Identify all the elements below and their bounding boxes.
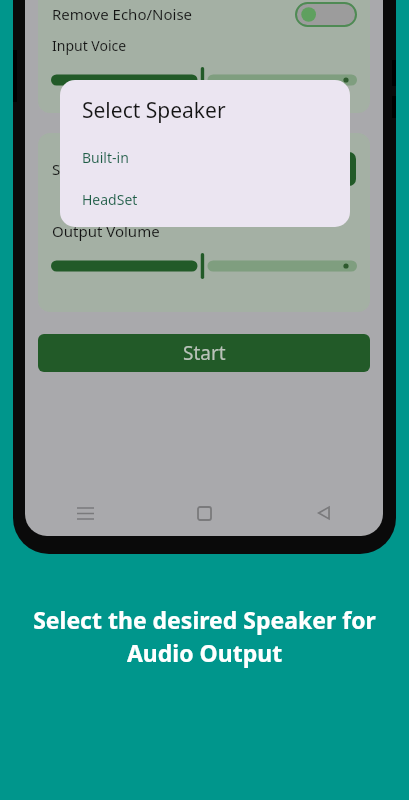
staticText: Input Voice: [52, 36, 127, 55]
button[interactable]: Start: [38, 334, 370, 372]
button[interactable]: Built-in: [60, 147, 350, 167]
button[interactable]: HeadSet: [60, 189, 350, 209]
staticText: Select the desired Speaker for Audio Out…: [18, 604, 391, 669]
staticText: HeadSet: [82, 190, 138, 209]
staticText: Remove Echo/Noise: [52, 4, 193, 24]
staticText: Select Speaker: [82, 96, 226, 125]
button[interactable]: Recent apps: [25, 490, 145, 536]
button[interactable]: Built-in: [260, 152, 356, 186]
button[interactable]: Home: [145, 490, 264, 536]
staticText: Built-in: [82, 148, 129, 167]
button[interactable]: Back: [264, 490, 383, 536]
staticText: Start: [183, 340, 226, 366]
button[interactable]: [51, 253, 357, 279]
button[interactable]: Remove Echo/Noise: [38, 0, 370, 30]
button[interactable]: [51, 67, 357, 93]
staticText: Speaker: [52, 159, 110, 179]
staticText: Output Volume: [52, 221, 160, 241]
